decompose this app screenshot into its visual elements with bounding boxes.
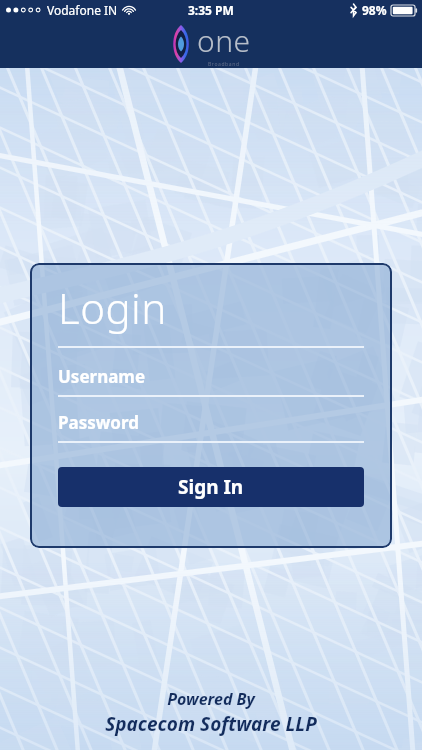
staticText: Sign In [178,474,244,500]
staticText: one [197,20,251,61]
staticText: Powered By [167,688,255,710]
staticText: Login [58,279,167,336]
staticText: 98% [362,2,387,18]
staticText: Spacecom Software LLP [105,711,317,737]
staticText: Password [58,411,139,434]
other: One Broadband logo [171,20,251,68]
button[interactable]: Sign In [58,467,364,507]
staticText: Broadband [208,61,240,68]
staticText: Username [58,365,146,388]
staticText: 3:35 PM [188,2,234,18]
staticText: Vodafone IN [47,2,118,18]
